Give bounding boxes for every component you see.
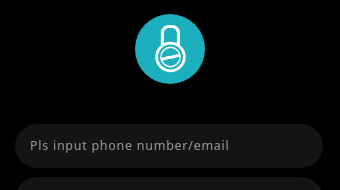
other: App logo: [135, 14, 205, 84]
staticText: Pls input phone number/email: [30, 137, 230, 154]
button[interactable]: Pls input phone number/email: [15, 124, 323, 168]
button[interactable]: [15, 177, 323, 190]
